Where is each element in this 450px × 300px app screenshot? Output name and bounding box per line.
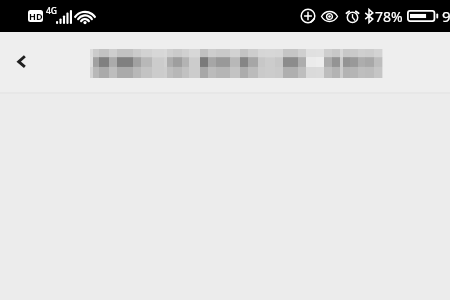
staticText: 4G <box>46 5 58 17</box>
staticText: 78% <box>375 7 403 26</box>
button[interactable]: Back <box>5 45 37 77</box>
staticText: 9 <box>442 6 450 26</box>
staticText: HD <box>29 10 43 22</box>
